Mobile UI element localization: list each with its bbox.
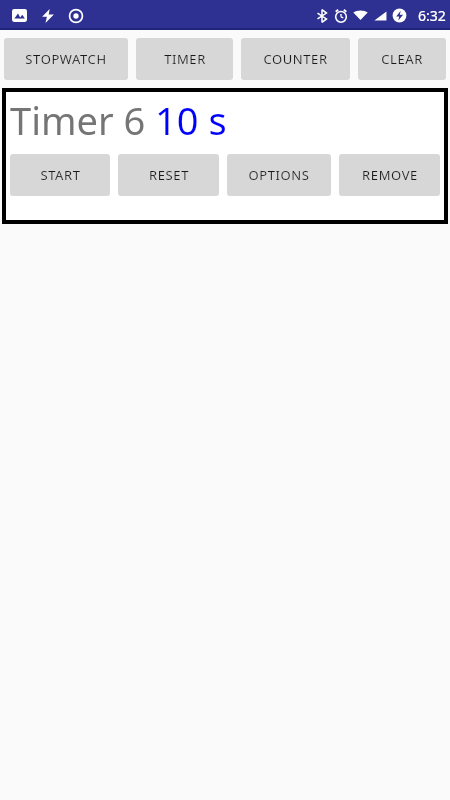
staticText: COUNTER: [263, 50, 328, 68]
button[interactable]: REMOVE: [339, 154, 440, 196]
button[interactable]: OPTIONS: [227, 154, 331, 196]
button[interactable]: CLEAR: [358, 38, 446, 80]
staticText: RESET: [149, 166, 189, 184]
staticText: START: [40, 166, 81, 184]
button[interactable]: STOPWATCH: [4, 38, 128, 80]
staticText: REMOVE: [362, 166, 418, 184]
staticText: 6:32: [418, 6, 446, 25]
button[interactable]: TIMER: [136, 38, 233, 80]
staticText: Timer 6 10 s: [10, 94, 227, 146]
staticText: OPTIONS: [248, 166, 310, 184]
staticText: CLEAR: [381, 50, 423, 68]
button[interactable]: RESET: [118, 154, 219, 196]
staticText: TIMER: [164, 50, 206, 68]
staticText: STOPWATCH: [25, 50, 107, 68]
button[interactable]: COUNTER: [241, 38, 350, 80]
button[interactable]: START: [10, 154, 110, 196]
